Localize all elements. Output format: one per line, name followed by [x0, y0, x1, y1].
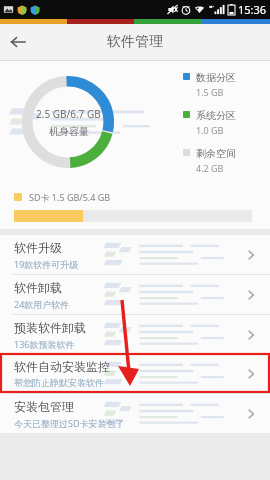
staticText: 数据分区 [196, 71, 236, 84]
button[interactable]: 软件自动安装监控 [0, 354, 270, 393]
staticText: 软件管理 [107, 33, 163, 51]
staticText: SD卡 1.5 GB/5.4 GB [29, 191, 111, 203]
staticText: 今天已整理过SD卡安装包了 [14, 417, 125, 429]
staticText: 136款预装软件 [14, 338, 75, 350]
button[interactable]: Back [0, 24, 36, 60]
button[interactable]: 安装包管理 [0, 394, 270, 433]
staticText: 剩余空间 [196, 147, 236, 160]
staticText: 机身容量 [49, 125, 89, 138]
staticText: 安装包管理 [14, 399, 74, 414]
staticText: 1.5 GB [196, 86, 224, 98]
staticText: 15:36 [238, 2, 267, 17]
staticText: 24款用户软件 [14, 298, 70, 310]
staticText: 2.5 GB/6.7 GB [36, 107, 101, 121]
staticText: 19款软件可升级 [14, 258, 79, 270]
button[interactable]: 软件升级 [0, 235, 270, 274]
staticText: 1.0 GB [196, 124, 224, 136]
staticText: 软件卸载 [14, 280, 62, 295]
staticText: 系统分区 [196, 109, 236, 122]
staticText: 软件自动安装监控 [14, 359, 110, 374]
staticText: 软件升级 [14, 240, 62, 255]
staticText: 预装软件卸载 [14, 320, 86, 335]
staticText: 帮您防止静默安装软件 [14, 377, 104, 388]
button[interactable]: 软件卸载 [0, 275, 270, 314]
button[interactable]: 预装软件卸载 [0, 315, 270, 354]
staticText: 4.2 GB [196, 162, 224, 174]
